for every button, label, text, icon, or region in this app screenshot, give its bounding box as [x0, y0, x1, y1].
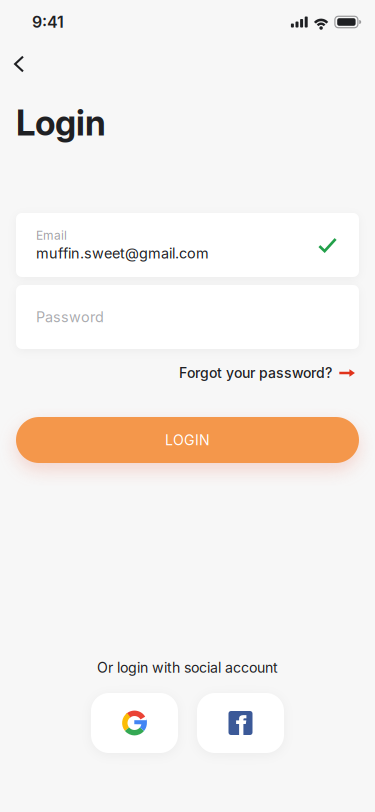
staticText: muffin.sweet@gmail.com: [36, 244, 209, 262]
button[interactable]: Forgot your password?: [0, 353, 375, 393]
button[interactable]: Continue with Facebook: [197, 693, 284, 753]
staticText: Login: [16, 102, 106, 144]
button[interactable]: Continue with Google: [91, 693, 178, 753]
staticText: Or login with social account: [97, 659, 278, 676]
button[interactable]: Back: [0, 44, 54, 84]
button[interactable]: LOGIN: [16, 417, 359, 463]
staticText: Email: [36, 228, 67, 242]
staticText: LOGIN: [165, 431, 210, 448]
staticText: 9:41: [32, 12, 64, 32]
staticText: Password: [36, 308, 104, 326]
staticText: Forgot your password?: [179, 364, 332, 381]
